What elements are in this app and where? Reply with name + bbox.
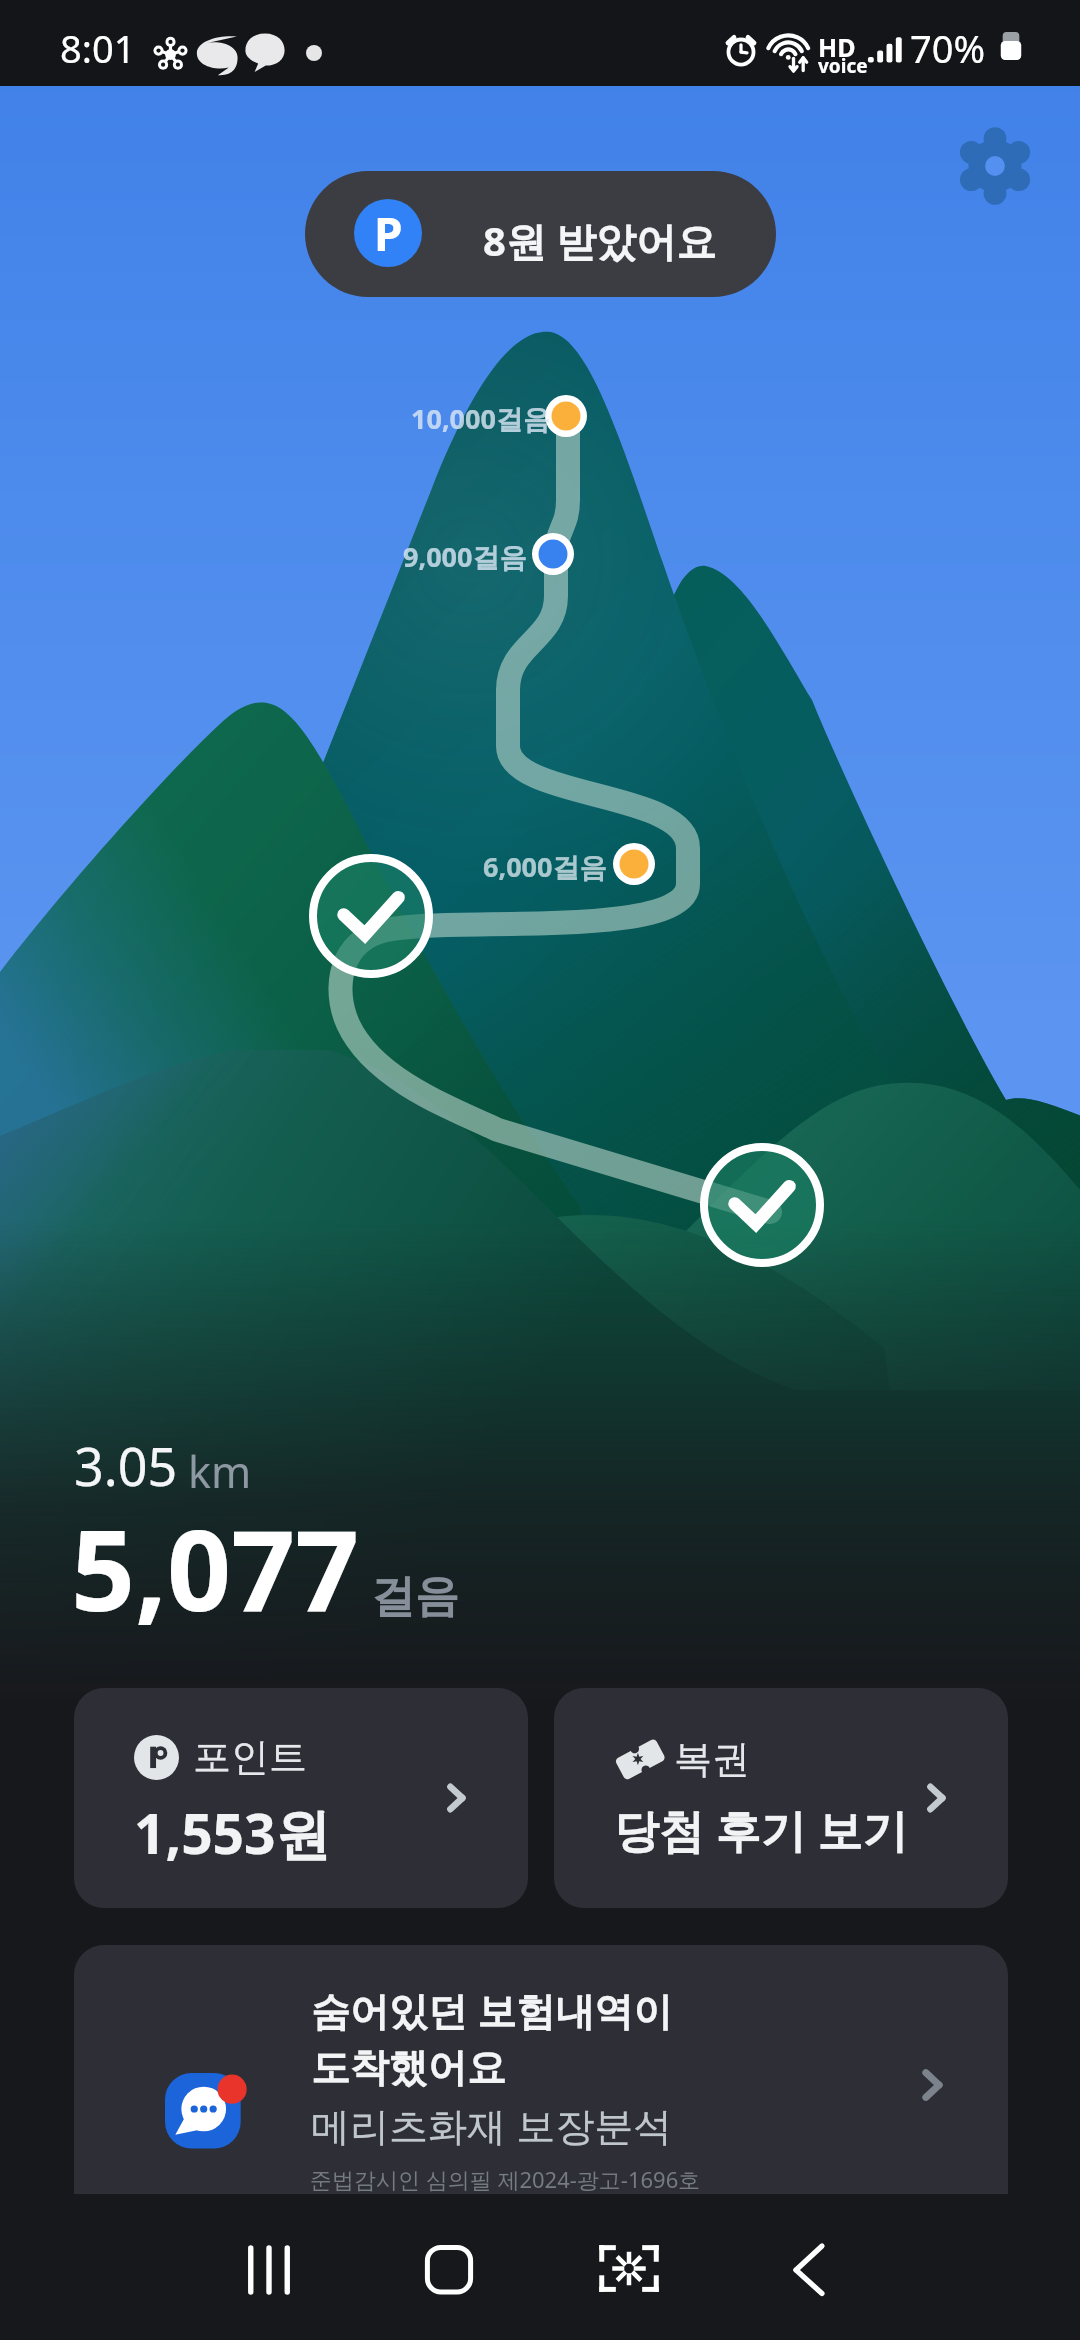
staticText: 준법감시인 심의필 제2024-광고-1696호 [310, 2164, 701, 2194]
staticText: 3.05 [74, 1430, 178, 1501]
staticText: 9,000걸음 [403, 538, 527, 575]
staticText: 1,553원 [134, 1795, 331, 1870]
staticText: 8:01 [60, 22, 136, 74]
button[interactable]: Home [399, 2219, 499, 2319]
button[interactable]: 숨어있던 보험내역이 [74, 1945, 1008, 2194]
staticText: 6,000걸음 [483, 848, 607, 885]
staticText: 5,077 [71, 1491, 360, 1644]
button[interactable]: 복권 [554, 1688, 1008, 1908]
button[interactable]: 포인트 [74, 1688, 528, 1908]
staticText: 70% [910, 22, 986, 74]
staticText: 복권 [674, 1735, 750, 1783]
staticText: P [374, 202, 403, 265]
button[interactable]: Screenshot [579, 2222, 679, 2322]
staticText: 숨어있던 보험내역이 [311, 1983, 673, 2036]
staticText: 당첨 후기 보기 [614, 1799, 908, 1860]
staticText: 10,000걸음 [411, 400, 550, 437]
staticText: HD [818, 30, 856, 64]
button[interactable]: P [305, 171, 776, 297]
staticText: 도착했어요 [311, 2043, 506, 2092]
staticText: km [188, 1442, 252, 1501]
button[interactable]: Back [762, 2219, 862, 2319]
button[interactable]: Settings [954, 125, 1036, 207]
staticText: 8원 받았어요 [483, 213, 717, 268]
staticText: 걸음 [371, 1569, 459, 1624]
staticText: 메리츠화재 보장분석 [311, 2098, 673, 2151]
staticText: voice [818, 53, 868, 79]
staticText: 포인트 [193, 1733, 307, 1781]
button[interactable]: Recents [219, 2219, 319, 2319]
